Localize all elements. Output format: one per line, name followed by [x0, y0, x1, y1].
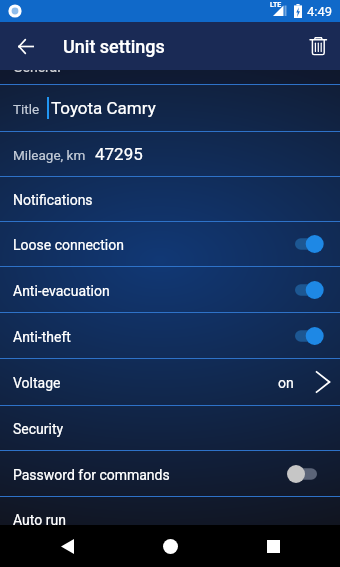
- other: Open Voltage: [316, 371, 330, 393]
- button[interactable]: Anti-theft: [0, 313, 340, 358]
- staticText: General: [13, 70, 61, 73]
- staticText: Voltage: [13, 375, 61, 391]
- staticText: Loose connection: [13, 237, 124, 253]
- button[interactable]: Back: [2, 22, 50, 70]
- staticText: Security: [13, 421, 64, 437]
- button[interactable]: Toggle on: [283, 321, 329, 351]
- button[interactable]: Mileage, km: [0, 132, 340, 176]
- staticText: Anti-evacuation: [13, 283, 110, 299]
- button[interactable]: Toggle on: [283, 229, 329, 259]
- staticText: Anti-theft: [13, 329, 71, 345]
- staticText: Title: [13, 101, 40, 117]
- button[interactable]: Recents: [237, 525, 309, 567]
- button[interactable]: Password for commands: [0, 451, 340, 496]
- staticText: Mileage, km: [13, 147, 86, 163]
- button[interactable]: Security: [0, 406, 340, 450]
- button[interactable]: Anti-evacuation: [0, 267, 340, 312]
- button[interactable]: General: [0, 70, 340, 84]
- staticText: 4:49: [307, 4, 333, 19]
- button[interactable]: Back: [31, 525, 103, 567]
- button[interactable]: Voltage: [0, 359, 340, 405]
- button[interactable]: Auto run: [0, 497, 340, 525]
- button[interactable]: Loose connection: [0, 222, 340, 266]
- staticText: LTE: [270, 1, 282, 9]
- staticText: on: [278, 375, 294, 391]
- button[interactable]: Delete: [294, 22, 340, 70]
- staticText: Toyota Camry: [51, 98, 156, 118]
- button[interactable]: Notifications: [0, 177, 340, 221]
- button[interactable]: Toggle off: [283, 459, 329, 489]
- button[interactable]: Home: [134, 525, 206, 567]
- staticText: Unit settings: [63, 36, 165, 57]
- button[interactable]: Title: [0, 85, 340, 131]
- staticText: Password for commands: [13, 467, 170, 483]
- staticText: Auto run: [13, 512, 66, 528]
- staticText: Notifications: [13, 192, 93, 208]
- button[interactable]: Toggle on: [283, 275, 329, 305]
- staticText: 47295: [95, 144, 143, 164]
